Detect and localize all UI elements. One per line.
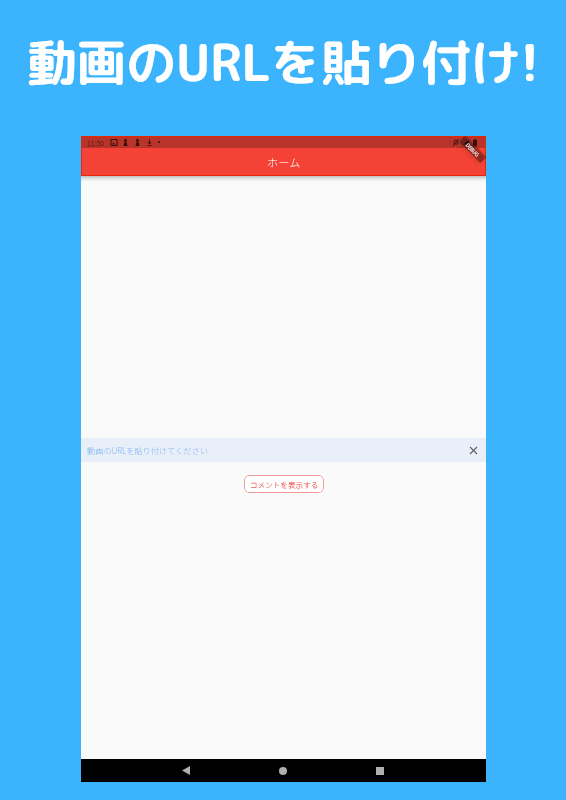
button[interactable]: コメントを表示する <box>244 475 324 493</box>
button[interactable]: Clear <box>461 438 485 462</box>
button[interactable]: Home <box>269 759 297 782</box>
staticText: 動画のURLを貼り付けてください <box>87 444 208 456</box>
staticText: 11:50 <box>87 137 105 148</box>
staticText: ホーム <box>267 154 301 170</box>
staticText: コメントを表示する <box>250 479 319 490</box>
staticText: DEBUG <box>465 141 481 158</box>
button[interactable]: Back <box>172 759 200 782</box>
button[interactable]: Recents <box>366 759 394 782</box>
staticText: 動画のURLを貼り付け! <box>0 27 566 96</box>
button[interactable]: 動画のURLを貼り付けてください <box>81 438 486 462</box>
